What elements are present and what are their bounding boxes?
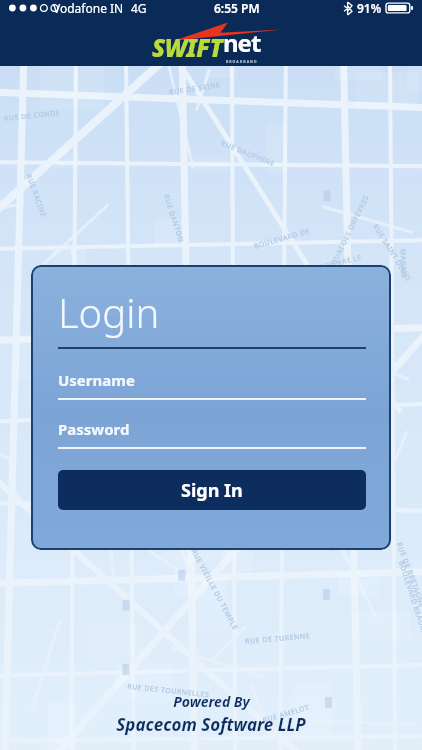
staticText: RUE DE CONDE bbox=[4, 108, 61, 124]
staticText: RUE DANTON bbox=[161, 193, 186, 245]
staticText: Username bbox=[58, 370, 135, 390]
staticText: RUE DE BRETAGNE bbox=[394, 541, 422, 609]
staticText: RUE VIEILLE DU TEMPLE bbox=[189, 547, 240, 632]
staticText: RUE SAINT DENIS bbox=[370, 222, 414, 284]
staticText: Spacecom Software LLP bbox=[116, 713, 306, 736]
staticText: RUE AMELOT bbox=[262, 702, 311, 725]
staticText: BOULEVARD BEAUMARCHAIS bbox=[396, 560, 422, 666]
staticText: QUAI DES ORFEVRES bbox=[329, 193, 372, 267]
staticText: RUE DAUPHINE bbox=[219, 138, 277, 169]
staticText: SWIFT bbox=[152, 31, 223, 64]
staticText: 4G bbox=[131, 0, 147, 16]
staticText: BOULEVARD DE bbox=[253, 226, 311, 252]
staticText: Login bbox=[58, 285, 160, 339]
button[interactable]: Sign In bbox=[58, 470, 366, 510]
staticText: 91% bbox=[357, 0, 382, 16]
staticText: 6:55 PM bbox=[214, 0, 260, 16]
staticText: net bbox=[223, 26, 261, 59]
staticText: Sign In bbox=[181, 478, 243, 503]
button[interactable]: Username bbox=[58, 370, 366, 400]
staticText: RUE DU TEMPLE bbox=[219, 434, 280, 460]
staticText: BROADBAND bbox=[226, 59, 258, 64]
staticText: Password bbox=[58, 419, 130, 439]
staticText: RUE DES TOURNELLES bbox=[127, 682, 210, 700]
staticText: RUE PIERRE LE bbox=[308, 252, 363, 275]
staticText: Powered By bbox=[173, 692, 250, 711]
staticText: RUE DES ARCHIVES bbox=[273, 506, 339, 554]
staticText: MARAIS bbox=[397, 249, 408, 279]
button[interactable]: Password bbox=[58, 419, 366, 449]
staticText: RUE RACINE bbox=[23, 173, 48, 219]
staticText: RUE DE TURENNE bbox=[245, 631, 311, 647]
staticText: Vodafone IN bbox=[53, 0, 124, 16]
staticText: RUE DE SEINE bbox=[169, 80, 221, 97]
